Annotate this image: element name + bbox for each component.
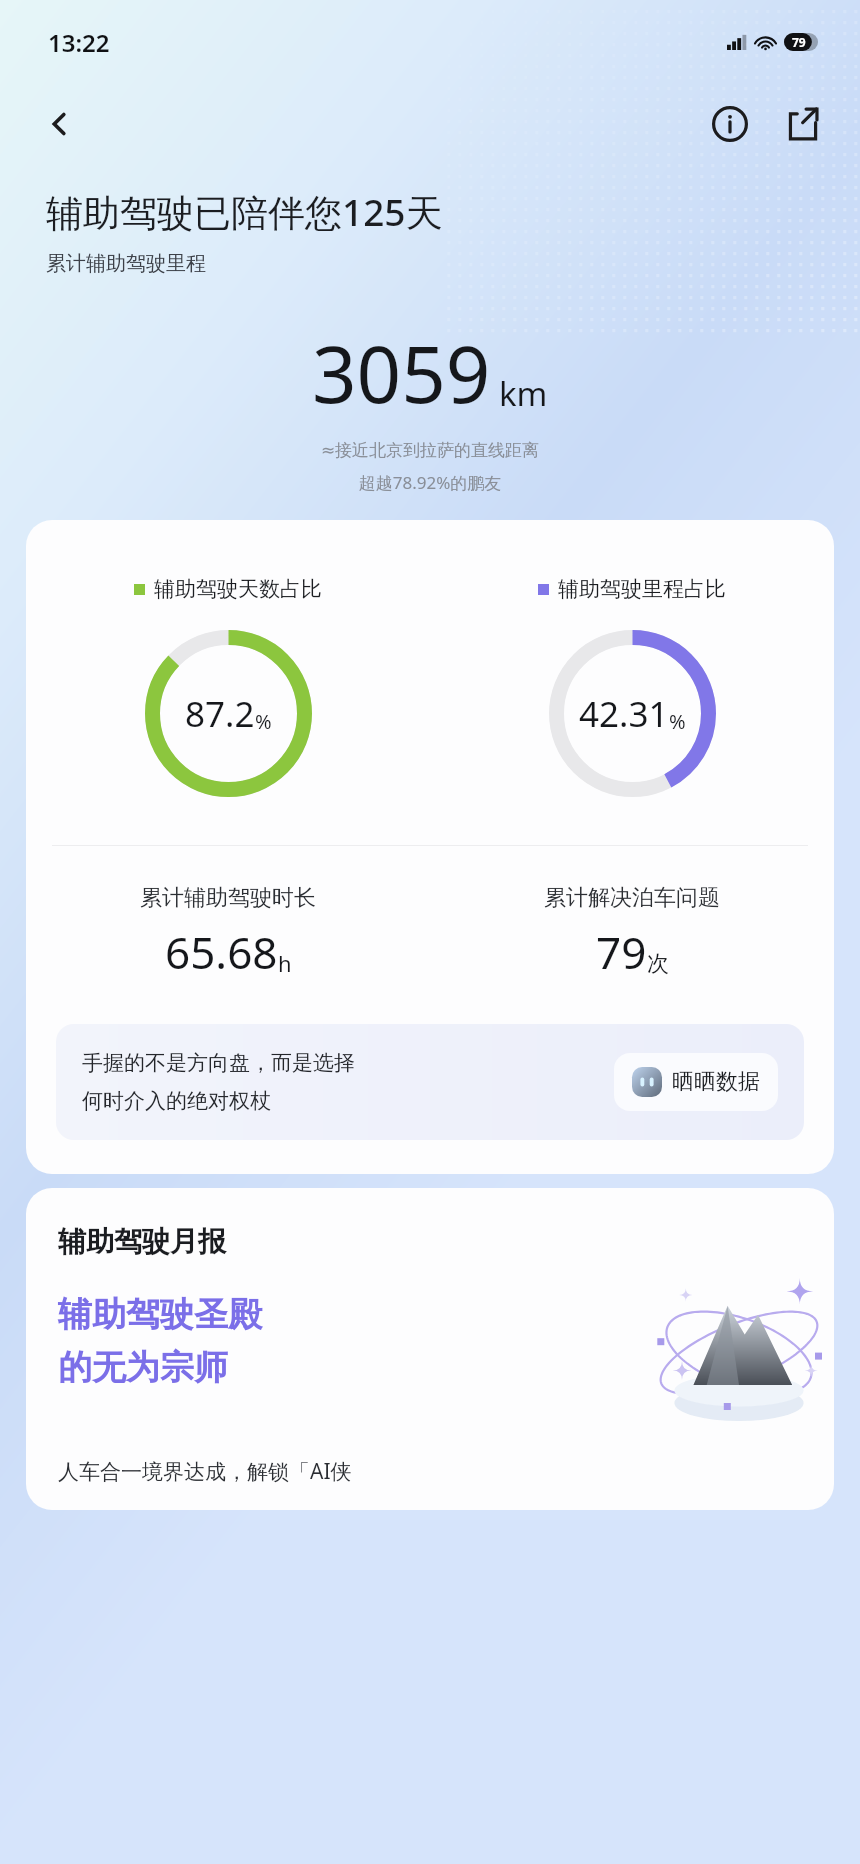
button[interactable]: Share [774, 96, 830, 152]
staticText: % [669, 708, 686, 735]
staticText: 13:22 [48, 26, 110, 59]
staticText: ≈接近北京到拉萨的直线距离 [0, 440, 860, 461]
staticText: 79 [792, 34, 806, 50]
staticText: h [278, 948, 292, 978]
button[interactable]: Info [702, 96, 758, 152]
staticText: 累计辅助驾驶里程 [46, 251, 206, 276]
staticText: km [499, 371, 548, 416]
staticText: 3059 [312, 320, 491, 426]
staticText: 辅助驾驶天数占比 [154, 576, 322, 602]
staticText: 辅助驾驶月报 [58, 1224, 226, 1259]
staticText: 次 [647, 950, 669, 978]
staticText: % [255, 708, 272, 735]
staticText: 79 [596, 922, 647, 982]
button[interactable]: 晒晒数据 [614, 1053, 778, 1111]
staticText: 辅助驾驶已陪伴您125天 [46, 186, 443, 237]
staticText: 何时介入的绝对权杖 [82, 1088, 271, 1114]
staticText: 晒晒数据 [672, 1068, 760, 1096]
staticText: 87.2 [185, 690, 255, 738]
staticText: 辅助驾驶里程占比 [558, 576, 726, 602]
staticText: 累计辅助驾驶时长 [140, 884, 316, 912]
staticText: 超越78.92%的鹏友 [0, 471, 860, 494]
staticText: 42.31 [579, 690, 669, 738]
staticText: 人车合一境界达成，解锁「AI侠 [58, 1457, 352, 1486]
staticText: 手握的不是方向盘，而是选择 [82, 1050, 355, 1076]
staticText: 65.68 [165, 922, 278, 982]
staticText: 累计解决泊车问题 [544, 884, 720, 912]
staticText: 辅助驾驶圣殿 [58, 1293, 262, 1336]
staticText: 的无为宗师 [58, 1346, 228, 1389]
button[interactable]: Back [32, 96, 88, 152]
